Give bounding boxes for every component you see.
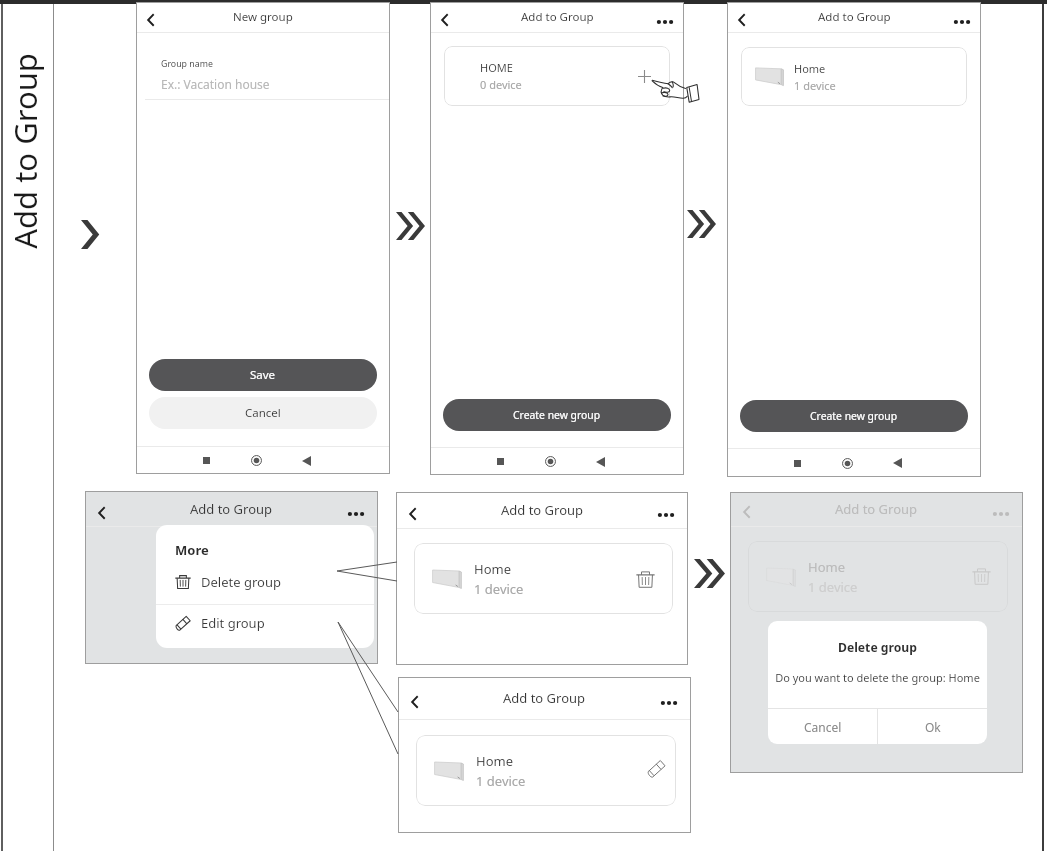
staticText: Add to Group (4, 36, 46, 266)
staticText: Ex.: Vacation house (161, 76, 270, 92)
button[interactable]: Add device (636, 68, 652, 84)
button[interactable]: Edit group (641, 760, 663, 782)
staticText: Cancel (245, 405, 281, 421)
button[interactable]: Home (136, 447, 256, 474)
button[interactable]: Cancel (768, 709, 877, 744)
button[interactable]: Back (430, 448, 600, 475)
button[interactable]: Home (741, 47, 967, 106)
button[interactable]: Home (416, 735, 676, 806)
button[interactable]: Home (727, 449, 847, 477)
button[interactable]: Ok (878, 709, 987, 744)
button[interactable]: Save (149, 359, 377, 391)
staticText: HOME (480, 60, 513, 75)
button[interactable]: Back (136, 447, 306, 474)
staticText: Add to Group (521, 9, 594, 25)
button[interactable]: Back (727, 449, 897, 477)
button[interactable]: More options (660, 694, 678, 712)
button[interactable]: More options (953, 13, 971, 31)
button[interactable]: Back (403, 505, 421, 523)
staticText: Edit group (201, 614, 265, 632)
staticText: 1 device (476, 772, 526, 790)
button[interactable]: Home (414, 543, 673, 614)
staticText: Delete group (201, 573, 281, 591)
staticText: Group name (161, 58, 213, 70)
staticText: Home (474, 560, 511, 578)
button[interactable]: Back (737, 503, 755, 521)
button[interactable]: More options (657, 506, 675, 524)
button[interactable]: Recents (430, 448, 500, 475)
staticText: Add to Group (190, 500, 273, 518)
staticText: 1 device (794, 78, 836, 93)
staticText: 0 device (480, 77, 522, 92)
staticText: Create new group (810, 409, 898, 423)
staticText: Add to Group (503, 689, 586, 707)
staticText: Do you want to delete the group: Home (770, 670, 985, 685)
staticText: Add to Group (501, 501, 584, 519)
staticText: 1 device (474, 580, 524, 598)
staticText: Home (476, 752, 513, 770)
button[interactable]: Home (430, 448, 550, 475)
button[interactable]: Create new group (443, 399, 671, 431)
staticText: Home (794, 61, 826, 76)
staticText: Create new group (513, 408, 601, 422)
button[interactable]: More options (347, 505, 365, 523)
button[interactable]: Create new group (740, 400, 968, 432)
button[interactable]: Delete group (638, 568, 660, 590)
button[interactable]: HOME (444, 46, 670, 106)
button[interactable]: Delete group (156, 568, 374, 595)
button[interactable]: Edit group (156, 605, 374, 640)
button[interactable]: Back (92, 504, 110, 522)
staticText: Add to Group (835, 500, 918, 518)
staticText: Add to Group (818, 9, 891, 25)
button[interactable]: Back (435, 11, 453, 29)
button[interactable]: Cancel (149, 397, 377, 429)
staticText: 1 device (808, 578, 858, 596)
button[interactable]: More options (656, 13, 674, 31)
staticText: More (175, 541, 209, 559)
staticText: Cancel (804, 719, 842, 735)
button[interactable]: Back (732, 11, 750, 29)
staticText: Home (808, 558, 845, 576)
button[interactable]: Back (141, 11, 159, 29)
staticText: Save (250, 367, 276, 383)
button[interactable]: Recents (727, 449, 797, 477)
button[interactable]: Back (405, 693, 423, 711)
button[interactable]: Recents (136, 447, 206, 474)
staticText: Ok (925, 719, 941, 735)
button[interactable]: More options (992, 505, 1010, 523)
staticText: New group (233, 9, 293, 25)
staticText: Delete group (768, 639, 987, 656)
